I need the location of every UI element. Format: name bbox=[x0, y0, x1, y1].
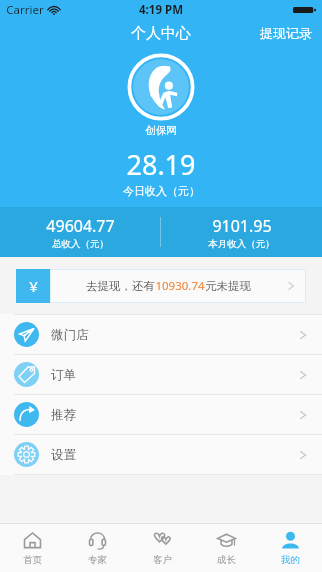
button[interactable]: 首页 bbox=[0, 524, 65, 572]
staticText: 订单 bbox=[51, 367, 76, 383]
staticText: 客户 bbox=[153, 554, 172, 566]
staticText: 微门店 bbox=[51, 327, 89, 343]
staticText: 今日收入（元） bbox=[123, 184, 200, 198]
staticText: 去提现，还有 bbox=[86, 279, 155, 293]
button[interactable]: 微门店 bbox=[0, 315, 322, 354]
button[interactable]: 推荐 bbox=[0, 395, 322, 434]
staticText: 成长 bbox=[217, 554, 236, 566]
staticText: 我的 bbox=[281, 554, 300, 566]
button[interactable]: 客户 bbox=[130, 524, 194, 572]
button[interactable]: ¥ bbox=[16, 269, 306, 303]
staticText: 9101.95 bbox=[212, 215, 272, 237]
button[interactable]: 订单 bbox=[0, 355, 322, 394]
staticText: 总收入（元） bbox=[52, 238, 109, 250]
staticText: 4:19 PM bbox=[139, 2, 183, 18]
staticText: ¥ bbox=[29, 276, 38, 296]
button[interactable]: 提现记录 bbox=[250, 22, 322, 44]
button[interactable]: 专家 bbox=[65, 524, 130, 572]
staticText: 本月收入（元） bbox=[208, 238, 275, 250]
staticText: 设置 bbox=[51, 447, 76, 463]
button[interactable]: 成长 bbox=[194, 524, 258, 572]
staticText: 首页 bbox=[23, 554, 42, 566]
staticText: 提现记录 bbox=[260, 25, 312, 41]
staticText: 创保网 bbox=[145, 124, 177, 137]
button[interactable]: 设置 bbox=[0, 435, 322, 474]
staticText: 28.19 bbox=[126, 146, 196, 183]
button[interactable]: 我的 bbox=[258, 524, 322, 572]
staticText: 49604.77 bbox=[46, 215, 115, 237]
staticText: 专家 bbox=[88, 554, 107, 566]
staticText: 10930.74 bbox=[155, 278, 205, 294]
staticText: 元未提现 bbox=[205, 279, 251, 293]
button[interactable]: 个人中心 bbox=[125, 22, 197, 45]
staticText: Carrier bbox=[6, 2, 44, 18]
staticText: 推荐 bbox=[51, 407, 76, 423]
staticText: 个人中心 bbox=[131, 24, 191, 43]
